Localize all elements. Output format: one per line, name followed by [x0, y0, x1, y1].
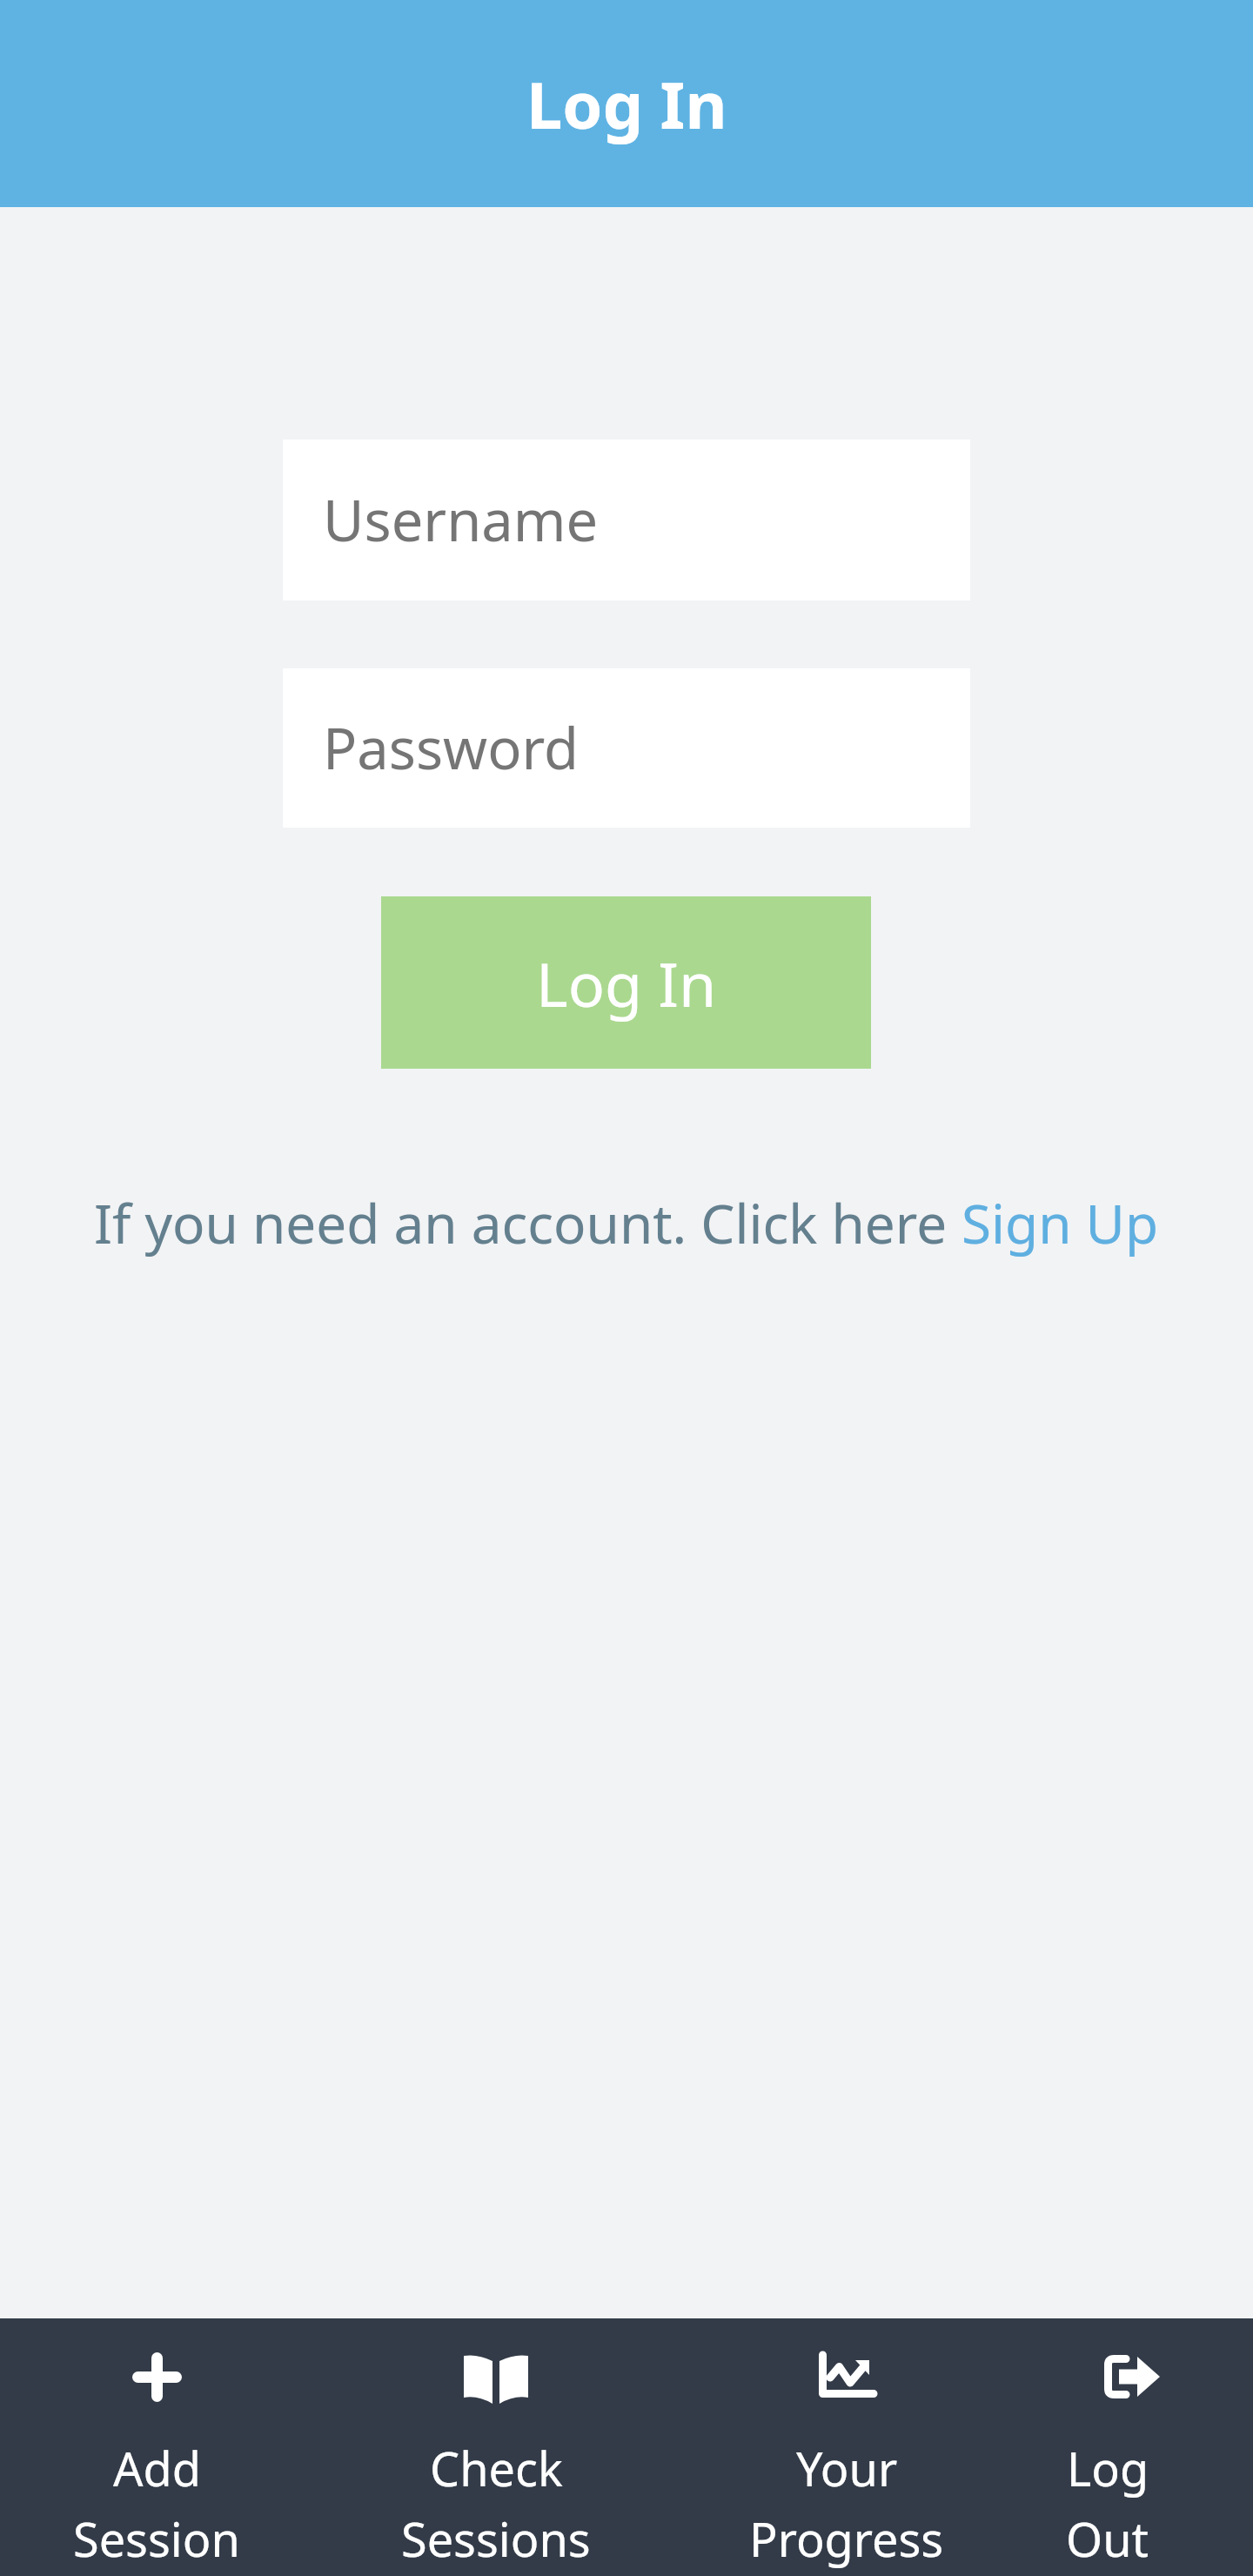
button[interactable]: Log In: [381, 896, 871, 1069]
staticText: Password: [323, 709, 579, 787]
staticText: Username: [323, 481, 599, 559]
staticText: Log In: [526, 60, 727, 148]
staticText: Log: [1067, 2436, 1149, 2500]
button[interactable]: Username: [283, 439, 970, 600]
button[interactable]: Sign Up: [962, 1186, 1159, 1259]
staticText: Out: [1066, 2506, 1149, 2571]
button[interactable]: Add: [26, 2318, 287, 2576]
button[interactable]: Log: [977, 2318, 1238, 2576]
button[interactable]: Check: [365, 2318, 626, 2576]
staticText: Your: [796, 2436, 898, 2500]
staticText: If you need an account. Click here: [94, 1186, 962, 1259]
staticText: Sessions: [401, 2506, 591, 2571]
staticText: Check: [430, 2436, 563, 2500]
staticText: Progress: [749, 2506, 944, 2571]
staticText: Session: [73, 2506, 240, 2571]
button[interactable]: Password: [283, 668, 970, 828]
staticText: Log In: [536, 942, 717, 1024]
button[interactable]: Your: [716, 2318, 977, 2576]
staticText: Add: [113, 2436, 201, 2500]
